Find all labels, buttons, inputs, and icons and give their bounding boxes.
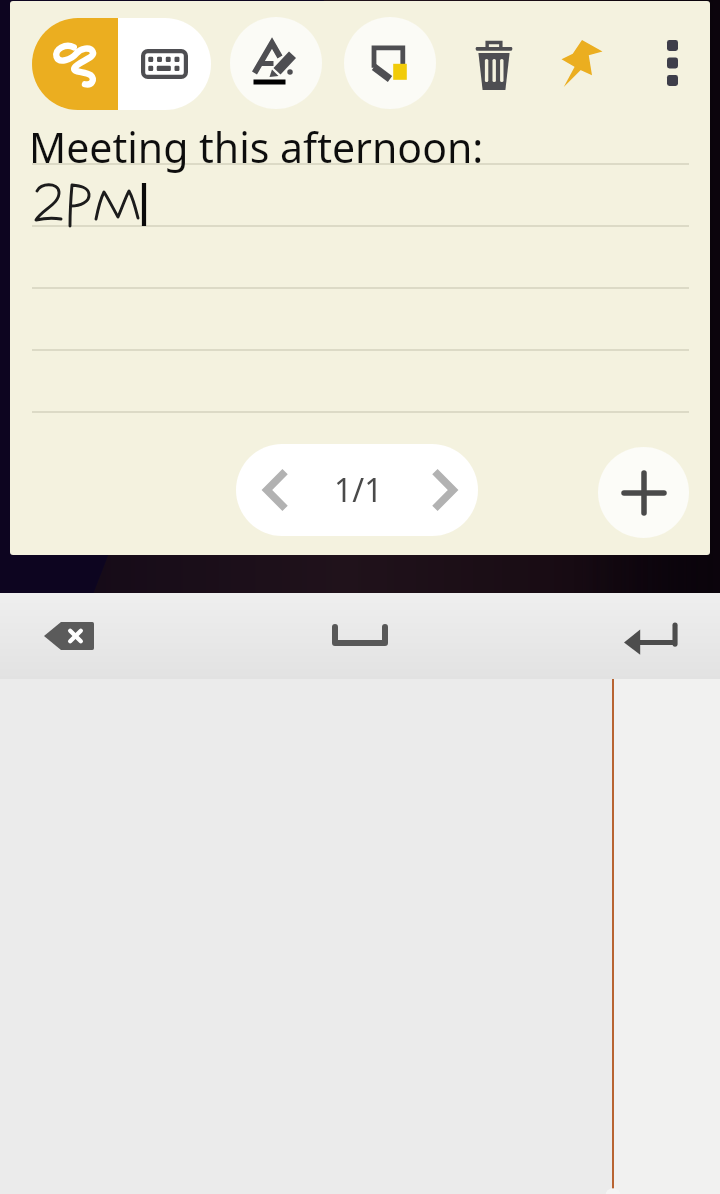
- button[interactable]: Keyboard mode: [118, 18, 211, 110]
- button[interactable]: Add page: [598, 447, 689, 538]
- button[interactable]: Next page: [409, 444, 478, 536]
- button[interactable]: Space: [300, 593, 420, 679]
- button[interactable]: Pin: [541, 26, 621, 106]
- button[interactable]: Pen style: [230, 17, 322, 109]
- button[interactable]: Enter: [591, 593, 711, 679]
- button[interactable]: Previous page: [239, 444, 311, 536]
- button[interactable]: Handwriting mode: [32, 18, 118, 110]
- button[interactable]: Delete: [454, 26, 534, 106]
- button[interactable]: Note background: [344, 17, 436, 109]
- staticText: Meeting this afternoon:: [29, 119, 484, 175]
- button[interactable]: More options: [636, 23, 708, 103]
- staticText: 1/1: [334, 468, 383, 512]
- button[interactable]: Backspace: [9, 593, 129, 679]
